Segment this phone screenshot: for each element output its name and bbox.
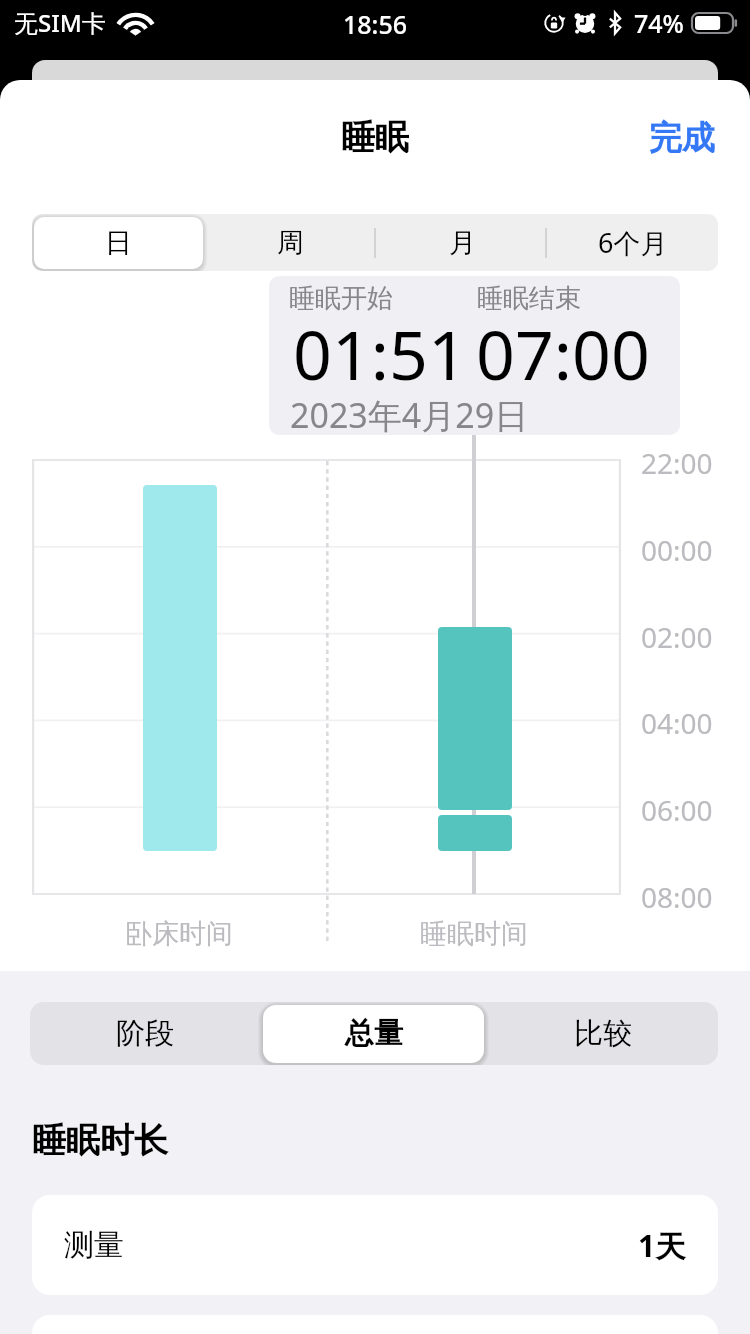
staticText: 01:51 (293, 307, 467, 400)
staticText: 比较 (574, 1015, 632, 1052)
staticText: 阶段 (116, 1015, 174, 1052)
staticText: 睡眠开始 (289, 282, 393, 315)
staticText: 睡眠 (341, 116, 409, 159)
staticText: 08:00 (641, 878, 713, 916)
button[interactable]: 测量 (32, 1195, 718, 1295)
button[interactable]: 完成 (632, 109, 732, 167)
staticText: 总量 (345, 1015, 403, 1052)
staticText: 00:00 (641, 531, 713, 569)
button[interactable]: 月 (376, 214, 548, 271)
button[interactable]: 阶段 (30, 1002, 259, 1065)
button[interactable]: 总量 (259, 1002, 488, 1065)
staticText: 完成 (649, 117, 715, 159)
button[interactable]: 比较 (488, 1002, 717, 1065)
staticText: 1天 (638, 1225, 686, 1266)
staticText: 22:00 (641, 444, 713, 482)
button[interactable]: 日 (32, 214, 204, 271)
staticText: 74% (634, 6, 684, 40)
staticText: 07:00 (476, 307, 650, 400)
staticText: 月 (449, 226, 476, 260)
staticText: 睡眠时间 (420, 917, 528, 951)
staticText: 卧床时间 (125, 917, 233, 951)
staticText: 睡眠结束 (477, 282, 581, 315)
staticText: 04:00 (641, 704, 713, 742)
staticText: 无SIM卡 (14, 6, 106, 39)
staticText: 睡眠时长 (32, 1119, 168, 1162)
staticText: 日 (105, 226, 132, 260)
button[interactable]: 6个月 (548, 214, 718, 271)
button[interactable]: 周 (204, 214, 376, 271)
staticText: 18:56 (343, 7, 408, 41)
staticText: 2023年4月29日 (290, 392, 529, 435)
staticText: 周 (277, 226, 304, 260)
staticText: 06:00 (641, 791, 713, 829)
staticText: 6个月 (598, 224, 668, 261)
staticText: 测量 (64, 1226, 124, 1264)
staticText: 02:00 (641, 618, 713, 656)
